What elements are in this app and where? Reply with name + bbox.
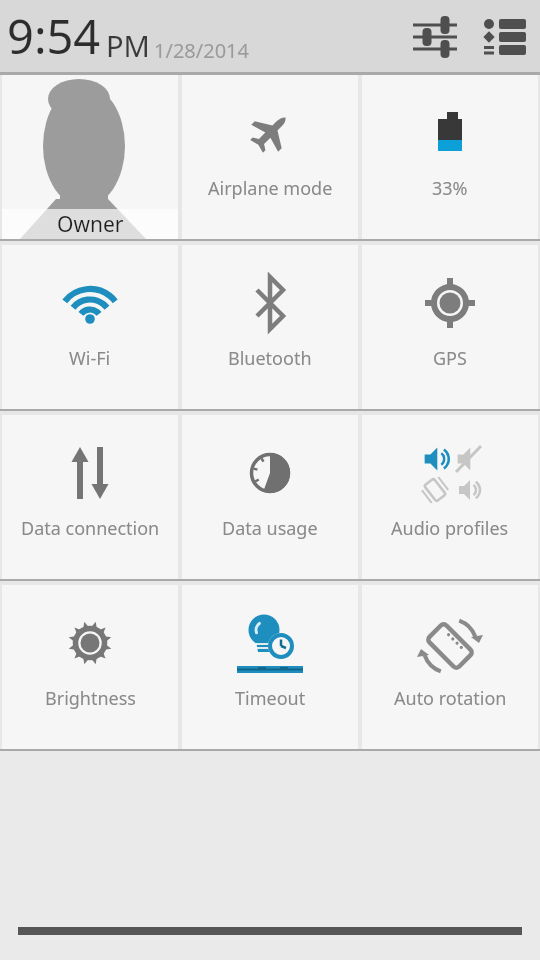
button[interactable]: Airplane mode <box>182 75 358 239</box>
button[interactable]: Auto rotation <box>362 585 538 749</box>
button[interactable]: GPS <box>362 245 538 409</box>
staticText: GPS <box>433 346 467 371</box>
button[interactable]: Audio profiles <box>362 415 538 579</box>
button[interactable]: Brightness <box>2 585 178 749</box>
staticText: Timeout <box>235 686 306 711</box>
button[interactable] <box>412 14 458 60</box>
staticText: Wi-Fi <box>69 346 111 371</box>
button[interactable]: Timeout <box>182 585 358 749</box>
button[interactable]: Data connection <box>2 415 178 579</box>
button[interactable]: Owner <box>2 75 178 239</box>
staticText: Bluetooth <box>228 346 312 371</box>
staticText: Audio profiles <box>391 516 509 541</box>
staticText: 1/28/2014 <box>154 37 249 64</box>
button[interactable] <box>480 13 528 61</box>
staticText: PM <box>106 26 150 65</box>
button[interactable]: Bluetooth <box>182 245 358 409</box>
staticText: Owner <box>57 210 124 239</box>
staticText: Data connection <box>21 516 160 541</box>
staticText: 33% <box>432 176 468 201</box>
button[interactable]: Wi-Fi <box>2 245 178 409</box>
staticText: Airplane mode <box>208 176 333 201</box>
staticText: Data usage <box>222 516 318 541</box>
staticText: 9:54 <box>7 4 101 68</box>
button[interactable]: 33% <box>362 75 538 239</box>
button[interactable]: Data usage <box>182 415 358 579</box>
staticText: Auto rotation <box>394 686 507 711</box>
staticText: Brightness <box>45 686 136 711</box>
